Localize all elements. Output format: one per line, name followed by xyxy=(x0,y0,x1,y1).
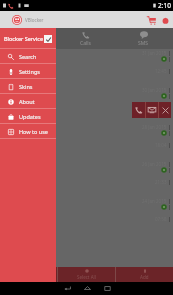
button[interactable]: 30 Jan 2015 xyxy=(0,86,173,123)
button[interactable]: About xyxy=(0,94,56,109)
staticText: VBlocker xyxy=(25,17,44,23)
button[interactable]: Clear xyxy=(0,267,57,282)
staticText: Select All xyxy=(77,274,96,280)
button[interactable]: Updates xyxy=(0,109,56,124)
button[interactable]: How to use xyxy=(0,124,56,139)
staticText: About xyxy=(19,98,35,105)
button[interactable]: 26 Jan 2015 xyxy=(0,160,173,197)
button[interactable]: 31 Jan 2015 xyxy=(0,49,173,86)
staticText: Search xyxy=(19,53,37,60)
staticText: Calls xyxy=(80,40,91,47)
button[interactable]: Message xyxy=(146,102,158,118)
staticText: Blocker Service xyxy=(4,35,44,42)
button[interactable]: SMS xyxy=(114,28,173,49)
staticText: Settings xyxy=(19,68,40,75)
button[interactable]: Back xyxy=(57,282,77,295)
button[interactable]: Status xyxy=(158,13,172,27)
staticText: Add xyxy=(140,274,149,280)
button[interactable]: Add xyxy=(116,267,173,282)
staticText: 09:12 xyxy=(155,105,167,111)
button[interactable]: Call xyxy=(132,102,145,118)
button[interactable]: Select All xyxy=(58,267,115,282)
button[interactable]: Close xyxy=(159,102,171,118)
button[interactable]: Settings xyxy=(0,64,56,79)
staticText: Updates xyxy=(19,113,41,120)
staticText: How to use xyxy=(19,128,48,135)
button[interactable]: Recents xyxy=(97,282,117,295)
staticText: SMS xyxy=(138,40,149,47)
staticText: Skins xyxy=(19,83,33,90)
button[interactable]: Search xyxy=(0,49,56,64)
button[interactable]: 28 Jan 2015 xyxy=(0,123,173,160)
button[interactable]: Blocker Service xyxy=(0,28,56,49)
button[interactable]: Calls xyxy=(56,28,114,49)
button[interactable]: Shop xyxy=(144,13,158,27)
staticText: 2:10 xyxy=(158,1,171,10)
button[interactable]: 24 Jan 2015 xyxy=(0,197,173,234)
button[interactable]: Home xyxy=(77,282,97,295)
button[interactable]: Skins xyxy=(0,79,56,94)
